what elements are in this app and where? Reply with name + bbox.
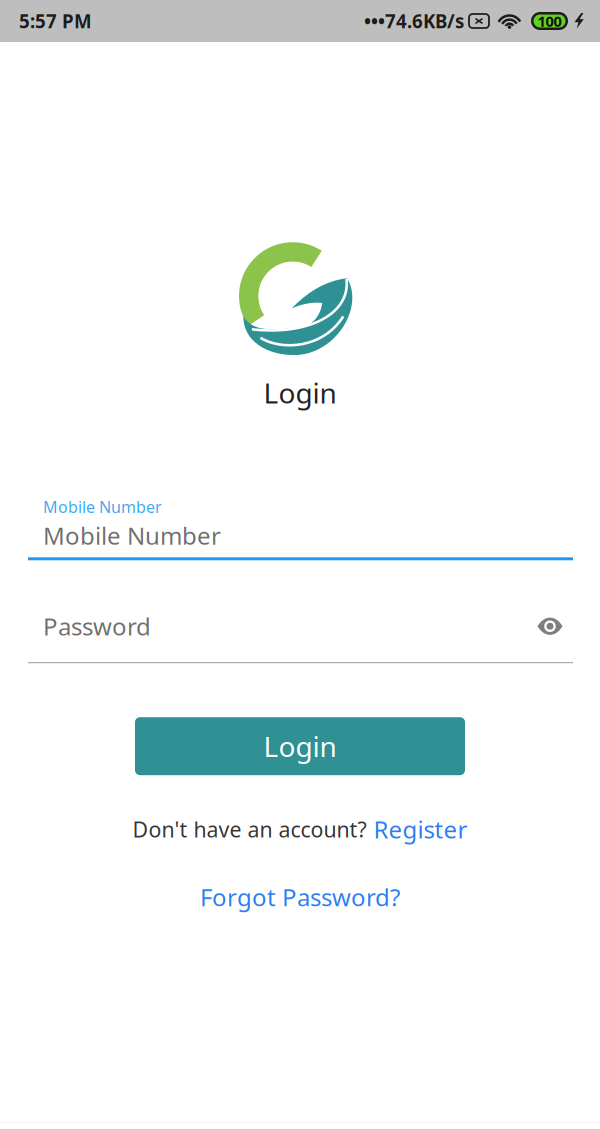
staticText: 100 (537, 11, 561, 31)
button[interactable]: Register (373, 813, 467, 845)
staticText: 5:57 PM (19, 9, 92, 33)
staticText: 74.6KB/s (385, 9, 464, 33)
staticText: Mobile Number (43, 519, 221, 551)
staticText: Register (373, 813, 467, 845)
staticText: Mobile Number (43, 496, 162, 517)
button[interactable]: Forgot Password? (200, 881, 400, 913)
button[interactable]: Login (135, 717, 465, 775)
staticText: Login (263, 374, 336, 411)
button[interactable]: Show password (537, 618, 573, 635)
staticText: Don't have an account? (132, 815, 366, 843)
staticText: ••• (364, 9, 385, 33)
staticText: Password (43, 610, 151, 642)
staticText: Forgot Password? (200, 881, 400, 913)
staticText: Login (263, 728, 336, 765)
